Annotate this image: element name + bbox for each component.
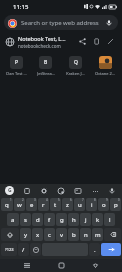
- button[interactable]: Octane 2…: [90, 54, 120, 78]
- staticText: g: [60, 216, 64, 224]
- staticText: f: [48, 216, 51, 224]
- button[interactable]: /: [18, 243, 29, 256]
- button[interactable]: Image: [73, 186, 83, 196]
- staticText: r: [42, 201, 45, 209]
- button[interactable]: t: [50, 198, 61, 211]
- staticText: 1: [10, 198, 12, 202]
- staticText: 2: [22, 198, 24, 202]
- button[interactable]: Open in tab: [91, 36, 102, 47]
- button[interactable]: Stickers: [56, 186, 66, 196]
- button[interactable]: B: [31, 54, 60, 78]
- staticText: Q: [74, 59, 78, 66]
- staticText: 5: [58, 198, 60, 202]
- staticText: notebookcheck.com: [18, 43, 61, 49]
- button[interactable]: Notebook Test, L…: [0, 32, 122, 51]
- staticText: y: [24, 231, 28, 239]
- staticText: x: [36, 231, 40, 239]
- staticText: Notebook Test, L…: [18, 35, 66, 42]
- staticText: u: [78, 201, 82, 209]
- staticText: 6: [70, 198, 72, 202]
- button[interactable]: ?123: [1, 243, 17, 256]
- button[interactable]: e: [26, 198, 37, 211]
- button[interactable]: i: [86, 198, 97, 211]
- button[interactable]: f: [44, 213, 55, 226]
- staticText: Search or type web address: [21, 19, 104, 27]
- button[interactable]: P: [2, 54, 31, 78]
- staticText: Octane 2…: [95, 71, 115, 76]
- staticText: G: [8, 187, 12, 194]
- staticText: 7: [82, 198, 84, 202]
- staticText: w: [17, 201, 22, 209]
- staticText: 9: [106, 198, 108, 202]
- button[interactable]: Recents: [20, 259, 34, 272]
- staticText: 3: [34, 198, 36, 202]
- button[interactable]: Share: [77, 36, 88, 47]
- staticText: 4: [46, 198, 48, 202]
- staticText: 0: [118, 198, 120, 202]
- staticText: s: [24, 216, 27, 224]
- staticText: n: [84, 231, 88, 239]
- staticText: k: [96, 216, 100, 224]
- staticText: P: [15, 59, 19, 66]
- button[interactable]: Settings: [39, 186, 49, 196]
- button[interactable]: q: [1, 198, 13, 211]
- button[interactable]: d: [32, 213, 43, 226]
- button[interactable]: .: [89, 243, 100, 256]
- button[interactable]: More options: [90, 186, 100, 196]
- button[interactable]: s: [20, 213, 31, 226]
- button[interactable]: Go: [101, 243, 121, 256]
- staticText: d: [36, 216, 40, 224]
- staticText: p: [114, 201, 118, 209]
- button[interactable]: m: [92, 228, 103, 241]
- staticText: a: [11, 216, 15, 224]
- button[interactable]: b: [68, 228, 79, 241]
- button[interactable]: z: [62, 198, 73, 211]
- button[interactable]: p: [110, 198, 121, 211]
- button[interactable]: Backspace: [104, 228, 121, 241]
- staticText: b: [72, 231, 76, 239]
- staticText: j: [85, 216, 87, 224]
- staticText: B: [44, 59, 48, 66]
- button[interactable]: v: [56, 228, 67, 241]
- staticText: h: [72, 216, 76, 224]
- staticText: i: [91, 201, 93, 209]
- button[interactable]: y: [20, 228, 31, 241]
- button[interactable]: Google: [5, 186, 14, 195]
- staticText: e: [30, 201, 34, 209]
- button[interactable]: a: [7, 213, 19, 226]
- button[interactable]: Shift: [1, 228, 19, 241]
- button[interactable]: Q: [60, 54, 90, 78]
- button[interactable]: h: [68, 213, 79, 226]
- button[interactable]: Clipboard: [22, 186, 32, 196]
- staticText: l: [109, 216, 111, 224]
- button[interactable]: o: [98, 198, 109, 211]
- button[interactable]: u: [74, 198, 85, 211]
- staticText: q: [5, 201, 9, 209]
- button[interactable]: k: [92, 213, 103, 226]
- staticText: z: [66, 201, 69, 209]
- staticText: ?123: [5, 247, 14, 252]
- staticText: Kraken J…: [66, 71, 85, 76]
- button[interactable]: n: [80, 228, 91, 241]
- button[interactable]: l: [104, 213, 115, 226]
- button[interactable]: j: [80, 213, 91, 226]
- staticText: JetStrea…: [37, 71, 55, 76]
- button[interactable]: Back: [88, 259, 102, 272]
- button[interactable]: Edit query: [105, 36, 116, 47]
- button[interactable]: Voice input: [107, 186, 117, 196]
- button[interactable]: g: [56, 213, 67, 226]
- button[interactable]: Voice search: [104, 18, 114, 28]
- button[interactable]: Search or type web address: [4, 15, 118, 30]
- button[interactable]: Emoji: [30, 243, 41, 256]
- button[interactable]: c: [44, 228, 55, 241]
- button[interactable]: x: [32, 228, 43, 241]
- staticText: Dan Test …: [6, 71, 27, 76]
- staticText: t: [54, 201, 57, 209]
- button[interactable]: r: [38, 198, 49, 211]
- button[interactable]: w: [14, 198, 25, 211]
- staticText: c: [48, 231, 51, 239]
- staticText: 11:15: [13, 3, 29, 11]
- staticText: v: [60, 231, 64, 239]
- button[interactable]: Home: [54, 259, 68, 272]
